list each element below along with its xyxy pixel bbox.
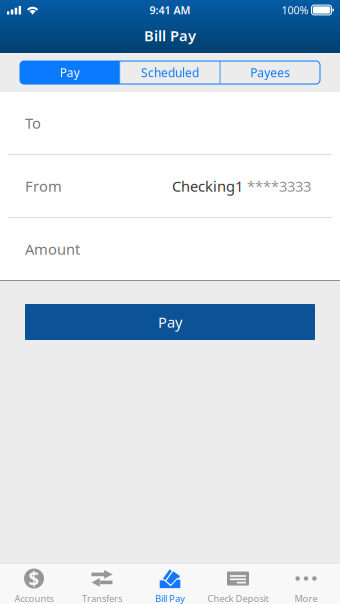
button[interactable]: $ <box>0 563 68 604</box>
staticText: Pay <box>158 312 182 332</box>
button[interactable]: Pay <box>25 304 315 340</box>
staticText: Check Deposit <box>207 592 268 604</box>
button[interactable]: From <box>0 155 340 217</box>
button[interactable]: Transfers <box>68 563 136 604</box>
button[interactable]: To <box>0 92 340 154</box>
staticText: To <box>25 113 41 133</box>
staticText: More <box>294 592 317 604</box>
staticText: Scheduled <box>141 64 199 80</box>
staticText: 9:41 AM <box>149 3 190 17</box>
staticText: Amount <box>25 239 80 259</box>
staticText: Pay <box>60 64 80 80</box>
staticText: $ <box>28 566 39 591</box>
staticText: ****3333 <box>247 176 311 196</box>
staticText: Checking1 <box>172 176 243 196</box>
staticText: Transfers <box>82 592 122 604</box>
staticText: From <box>25 176 62 196</box>
button[interactable]: Pay <box>20 61 119 84</box>
staticText: Payees <box>250 64 290 80</box>
staticText: 100% <box>281 3 308 17</box>
button[interactable]: Check Deposit <box>204 563 272 604</box>
button[interactable]: Payees <box>221 61 320 84</box>
button[interactable]: Bill Pay <box>136 563 204 604</box>
staticText: Bill Pay <box>155 592 185 604</box>
button[interactable]: More <box>272 563 340 604</box>
staticText: Bill Pay <box>144 26 196 45</box>
button[interactable]: Amount <box>0 218 340 280</box>
staticText: Accounts <box>14 592 53 604</box>
button[interactable]: Scheduled <box>120 61 220 84</box>
